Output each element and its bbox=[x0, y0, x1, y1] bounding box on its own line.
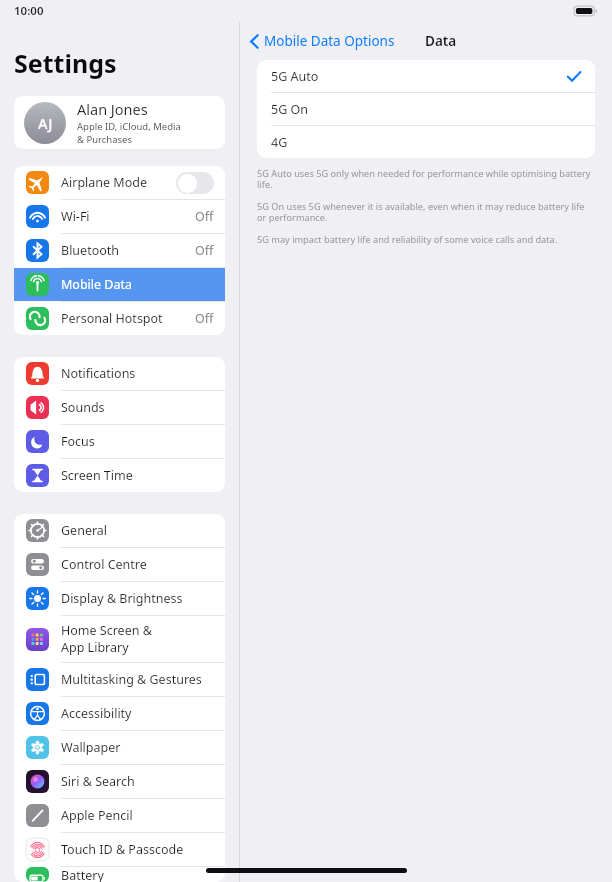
staticText: Alan Jones bbox=[77, 99, 148, 119]
staticText: Off bbox=[195, 310, 214, 327]
button[interactable]: Touch ID & Passcode bbox=[14, 833, 225, 866]
button[interactable]: Focus bbox=[14, 425, 225, 458]
staticText: Wallpaper bbox=[61, 739, 121, 756]
staticText: AJ bbox=[38, 113, 53, 133]
staticText: Notifications bbox=[61, 365, 136, 382]
button[interactable]: Screen Time bbox=[14, 459, 225, 492]
staticText: Personal Hotspot bbox=[61, 310, 163, 327]
button[interactable]: Display & Brightness bbox=[14, 582, 225, 615]
button[interactable]: Battery bbox=[14, 867, 225, 882]
button[interactable]: Control Centre bbox=[14, 548, 225, 581]
button[interactable]: Wallpaper bbox=[14, 731, 225, 764]
staticText: Apple Pencil bbox=[61, 807, 133, 824]
button[interactable]: Apple Pencil bbox=[14, 799, 225, 832]
staticText: 5G On bbox=[271, 101, 581, 118]
button[interactable]: 5G On bbox=[257, 93, 595, 125]
button[interactable]: 5G Auto bbox=[257, 60, 595, 92]
button[interactable]: Multitasking & Gestures bbox=[14, 663, 225, 696]
button[interactable]: Siri & Search bbox=[14, 765, 225, 798]
staticText: 5G may impact battery life and reliabili… bbox=[257, 233, 558, 246]
staticText: Focus bbox=[61, 433, 95, 450]
staticText: Apple ID, iCloud, Media bbox=[77, 120, 181, 133]
staticText: 5G Auto uses 5G only when needed for per… bbox=[257, 167, 595, 191]
staticText: Siri & Search bbox=[61, 773, 135, 790]
staticText: General bbox=[61, 522, 108, 539]
button[interactable]: Back to Mobile Data Options bbox=[240, 27, 401, 55]
staticText: Sounds bbox=[61, 399, 105, 416]
staticText: Screen Time bbox=[61, 467, 133, 484]
staticText: Control Centre bbox=[61, 556, 147, 573]
staticText: Mobile Data Options bbox=[264, 32, 395, 50]
button[interactable]: AJ bbox=[14, 96, 225, 149]
staticText: 5G On uses 5G whenever it is available, … bbox=[257, 200, 595, 224]
staticText: Multitasking & Gestures bbox=[61, 671, 202, 688]
button[interactable]: Airplane Mode toggle, off bbox=[176, 172, 214, 194]
button[interactable]: Accessibility bbox=[14, 697, 225, 730]
staticText: Touch ID & Passcode bbox=[61, 841, 184, 858]
staticText: 5G Auto bbox=[271, 68, 567, 85]
staticText: Accessibility bbox=[61, 705, 132, 722]
staticText: 4G bbox=[271, 134, 581, 151]
staticText: Data bbox=[425, 32, 457, 50]
staticText: Home Screen & bbox=[61, 622, 152, 639]
staticText: App Library bbox=[61, 639, 129, 656]
staticText: Settings bbox=[14, 46, 117, 80]
button[interactable]: Mobile Data bbox=[14, 268, 225, 301]
button[interactable]: General bbox=[14, 514, 225, 547]
staticText: Display & Brightness bbox=[61, 590, 183, 607]
button[interactable]: Bluetooth bbox=[14, 234, 225, 267]
button[interactable]: Airplane Mode bbox=[14, 166, 225, 199]
button[interactable]: 4G bbox=[257, 126, 595, 158]
button[interactable]: Personal Hotspot bbox=[14, 302, 225, 335]
staticText: Off bbox=[195, 208, 214, 225]
staticText: Bluetooth bbox=[61, 242, 120, 259]
staticText: Off bbox=[195, 242, 214, 259]
staticText: 10:00 bbox=[14, 3, 44, 19]
staticText: & Purchases bbox=[77, 133, 132, 146]
button[interactable]: Notifications bbox=[14, 357, 225, 390]
staticText: Battery bbox=[61, 867, 104, 882]
button[interactable]: Home Screen & bbox=[14, 616, 225, 662]
staticText: Mobile Data bbox=[61, 276, 133, 293]
staticText: Airplane Mode bbox=[61, 174, 147, 191]
button[interactable]: Wi-Fi bbox=[14, 200, 225, 233]
staticText: Wi-Fi bbox=[61, 208, 90, 225]
button[interactable]: Sounds bbox=[14, 391, 225, 424]
